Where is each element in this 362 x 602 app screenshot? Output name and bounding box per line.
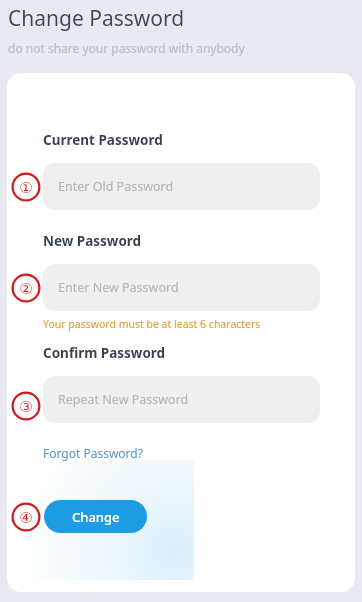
other: Annotation 4 (11, 502, 41, 532)
button[interactable]: Enter New Password (43, 264, 320, 311)
button[interactable]: Enter Old Password (43, 163, 320, 210)
staticText: ④ (19, 509, 33, 526)
staticText: ③ (19, 398, 33, 415)
staticText: Your password must be at least 6 charact… (43, 317, 261, 331)
other: Annotation 3 (11, 391, 41, 421)
staticText: ② (19, 280, 33, 297)
staticText: ① (19, 179, 33, 196)
staticText: Forgot Password? (43, 445, 143, 461)
staticText: Enter New Password (58, 279, 179, 296)
staticText: New Password (43, 232, 142, 250)
button[interactable]: Repeat New Password (43, 376, 320, 423)
staticText: Change Password (8, 4, 185, 33)
staticText: Change (72, 508, 120, 526)
staticText: Current Password (43, 131, 163, 149)
other: Annotation 2 (11, 273, 41, 303)
staticText: Enter Old Password (58, 178, 174, 195)
other: Annotation 1 (11, 172, 41, 202)
staticText: do not share your password with anybody (8, 40, 245, 56)
button[interactable]: Change (44, 500, 147, 533)
staticText: Confirm Password (43, 344, 166, 362)
staticText: Repeat New Password (58, 391, 189, 408)
button[interactable]: Forgot Password? (43, 445, 143, 461)
